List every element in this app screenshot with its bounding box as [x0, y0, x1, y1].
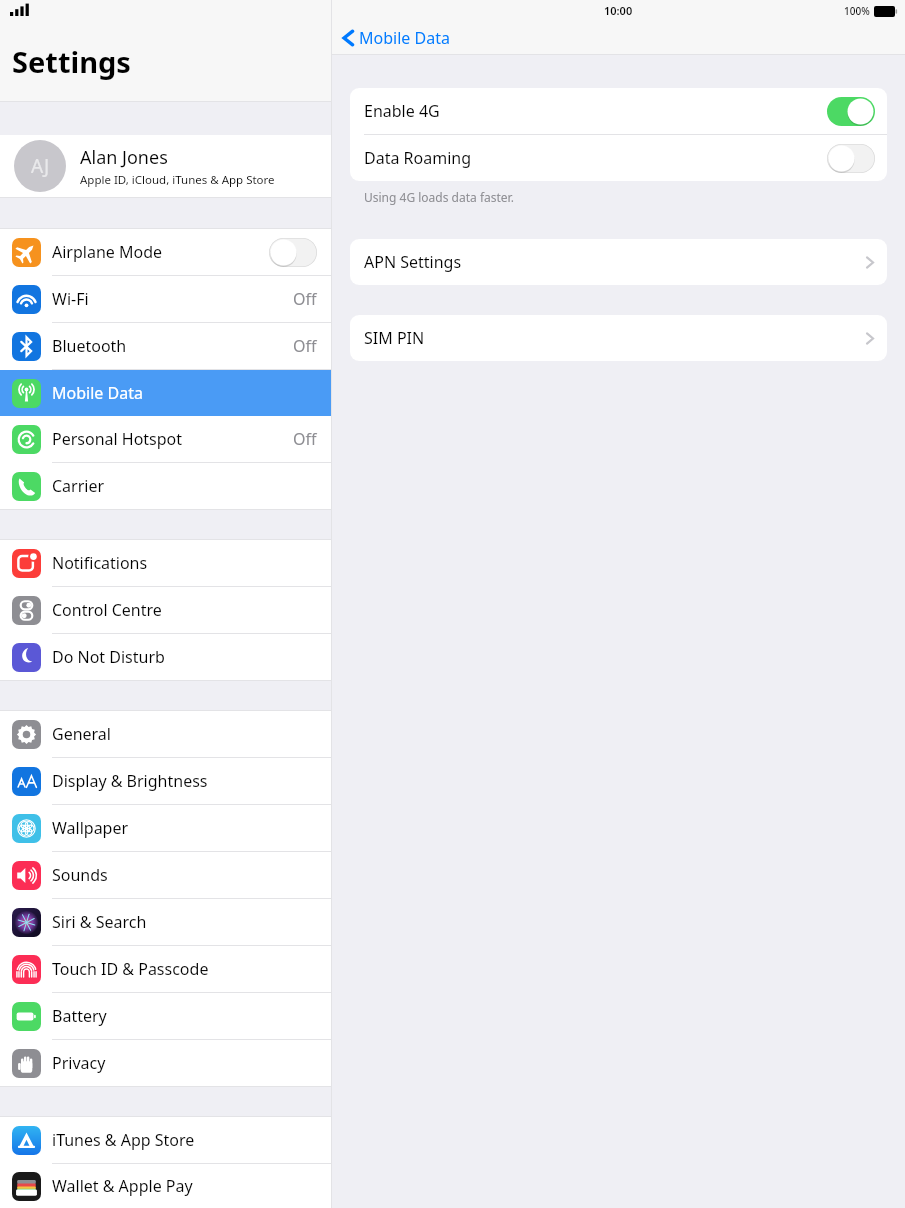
staticText: Control Centre — [52, 599, 162, 621]
button[interactable]: Battery — [0, 993, 331, 1039]
staticText: Settings — [12, 42, 131, 81]
button[interactable]: Mobile Data — [342, 27, 450, 49]
button[interactable]: Wallet & Apple Pay — [0, 1164, 331, 1208]
staticText: Using 4G loads data faster. — [364, 189, 514, 205]
staticText: Notifications — [52, 552, 148, 574]
staticText: Wi-Fi — [52, 288, 89, 310]
staticText: Data Roaming — [364, 147, 471, 169]
staticText: SIM PIN — [364, 327, 425, 349]
button[interactable]: Sounds — [0, 852, 331, 898]
staticText: Wallet & Apple Pay — [52, 1175, 193, 1197]
button[interactable]: General — [0, 711, 331, 757]
button[interactable]: Control Centre — [0, 587, 331, 633]
staticText: Sounds — [52, 864, 108, 886]
other: Open — [865, 330, 875, 347]
button[interactable]: Bluetooth — [0, 323, 331, 369]
button[interactable]: Toggle — [269, 238, 317, 267]
staticText: Enable 4G — [364, 100, 440, 122]
staticText: Bluetooth — [52, 335, 127, 357]
staticText: Off — [293, 288, 317, 310]
button[interactable]: iTunes & App Store — [0, 1117, 331, 1163]
button[interactable]: Display & Brightness — [0, 758, 331, 804]
button[interactable]: Carrier — [0, 463, 331, 509]
staticText: General — [52, 723, 111, 745]
staticText: Privacy — [52, 1052, 106, 1074]
staticText: Carrier — [52, 475, 105, 497]
staticText: Siri & Search — [52, 911, 147, 933]
staticText: iTunes & App Store — [52, 1129, 195, 1151]
staticText: Touch ID & Passcode — [52, 958, 209, 980]
button[interactable]: Toggle — [827, 97, 875, 126]
staticText: Wallpaper — [52, 817, 129, 839]
button[interactable]: Privacy — [0, 1040, 331, 1086]
staticText: Airplane Mode — [52, 241, 163, 263]
button[interactable]: Enable 4G — [350, 88, 887, 134]
staticText: Off — [293, 428, 317, 450]
staticText: 100% — [844, 4, 870, 18]
button[interactable]: Data Roaming — [350, 135, 887, 181]
button[interactable]: Touch ID & Passcode — [0, 946, 331, 992]
button[interactable]: SIM PIN — [350, 315, 887, 361]
button[interactable]: Do Not Disturb — [0, 634, 331, 680]
other: Open — [865, 254, 875, 271]
staticText: AJ — [31, 153, 50, 179]
staticText: 10:00 — [604, 3, 633, 18]
staticText: APN Settings — [364, 251, 462, 273]
staticText: Alan Jones — [80, 145, 168, 170]
staticText: Display & Brightness — [52, 770, 208, 792]
button[interactable]: AJ — [0, 135, 331, 197]
staticText: Apple ID, iCloud, iTunes & App Store — [80, 172, 275, 188]
button[interactable]: APN Settings — [350, 239, 887, 285]
staticText: Mobile Data — [359, 27, 450, 49]
button[interactable]: Toggle — [827, 144, 875, 173]
staticText: Do Not Disturb — [52, 646, 165, 668]
button[interactable]: Mobile Data — [0, 370, 331, 416]
button[interactable]: Wi-Fi — [0, 276, 331, 322]
staticText: Mobile Data — [52, 382, 143, 404]
button[interactable]: Siri & Search — [0, 899, 331, 945]
staticText: Personal Hotspot — [52, 428, 183, 450]
button[interactable]: Personal Hotspot — [0, 416, 331, 462]
staticText: Battery — [52, 1005, 107, 1027]
staticText: Off — [293, 335, 317, 357]
button[interactable]: Wallpaper — [0, 805, 331, 851]
button[interactable]: Airplane Mode — [0, 229, 331, 275]
button[interactable]: Notifications — [0, 540, 331, 586]
